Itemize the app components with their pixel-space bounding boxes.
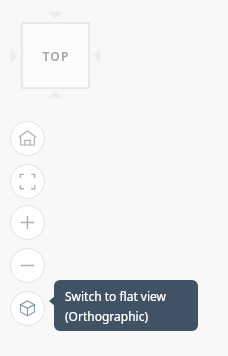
button[interactable]: Switch to flat view (Orthographic) <box>10 291 45 326</box>
button[interactable]: Zoom in <box>10 205 45 240</box>
staticText: (Orthographic) <box>65 308 149 324</box>
button[interactable]: TOP <box>22 23 89 88</box>
staticText: Switch to flat view <box>65 288 167 304</box>
staticText: TOP <box>42 48 70 64</box>
button[interactable]: Fit to view <box>10 164 45 199</box>
button[interactable]: Zoom out <box>10 248 45 283</box>
button[interactable]: Home view <box>10 121 45 156</box>
